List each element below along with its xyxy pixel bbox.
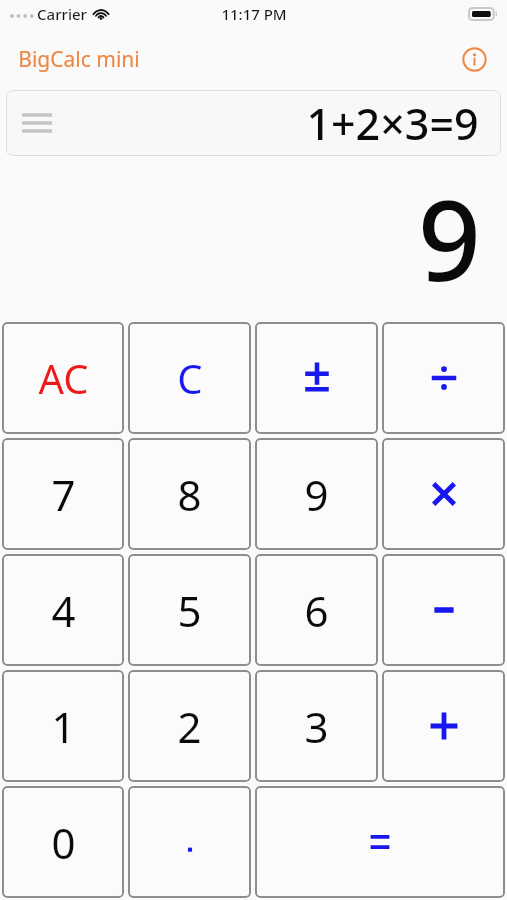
button[interactable]: Minus bbox=[382, 554, 505, 666]
staticText: 1+2×3=9 bbox=[306, 94, 479, 153]
staticText: 2 bbox=[177, 698, 202, 755]
button[interactable]: Plus minus bbox=[255, 322, 378, 434]
staticText: 8 bbox=[177, 466, 202, 523]
staticText: BigCalc mini bbox=[18, 45, 140, 74]
button[interactable]: 3 bbox=[255, 670, 378, 782]
staticText: 0 bbox=[51, 814, 76, 871]
button[interactable]: Equals bbox=[255, 786, 505, 898]
button[interactable]: 7 bbox=[2, 438, 124, 550]
staticText: C bbox=[177, 351, 203, 405]
staticText: Carrier bbox=[37, 4, 87, 24]
button[interactable]: 1 bbox=[2, 670, 124, 782]
staticText: 4 bbox=[51, 582, 76, 639]
button[interactable]: AC bbox=[2, 322, 124, 434]
staticText: 5 bbox=[177, 582, 202, 639]
staticText: 7 bbox=[51, 466, 76, 523]
staticText: 9 bbox=[304, 466, 329, 523]
button[interactable]: C bbox=[128, 322, 251, 434]
button[interactable]: 0 bbox=[2, 786, 124, 898]
staticText: AC bbox=[38, 351, 89, 405]
button[interactable]: 8 bbox=[128, 438, 251, 550]
button[interactable]: 9 bbox=[255, 438, 378, 550]
staticText: 3 bbox=[304, 698, 329, 755]
staticText: 1 bbox=[51, 698, 76, 755]
button[interactable]: Info bbox=[457, 42, 491, 76]
button[interactable]: 4 bbox=[2, 554, 124, 666]
staticText: 6 bbox=[304, 582, 329, 639]
button[interactable]: Multiply bbox=[382, 438, 505, 550]
button[interactable]: 2 bbox=[128, 670, 251, 782]
button[interactable]: BigCalc mini bbox=[18, 45, 140, 74]
button[interactable]: 6 bbox=[255, 554, 378, 666]
staticText: 9 bbox=[418, 163, 481, 313]
button[interactable]: 5 bbox=[128, 554, 251, 666]
button[interactable]: Divide bbox=[382, 322, 505, 434]
button[interactable]: 1+2×3=9 bbox=[6, 90, 501, 156]
button[interactable]: Decimal point bbox=[128, 786, 251, 898]
staticText: 11:17 PM bbox=[221, 4, 287, 24]
button[interactable]: Plus bbox=[382, 670, 505, 782]
